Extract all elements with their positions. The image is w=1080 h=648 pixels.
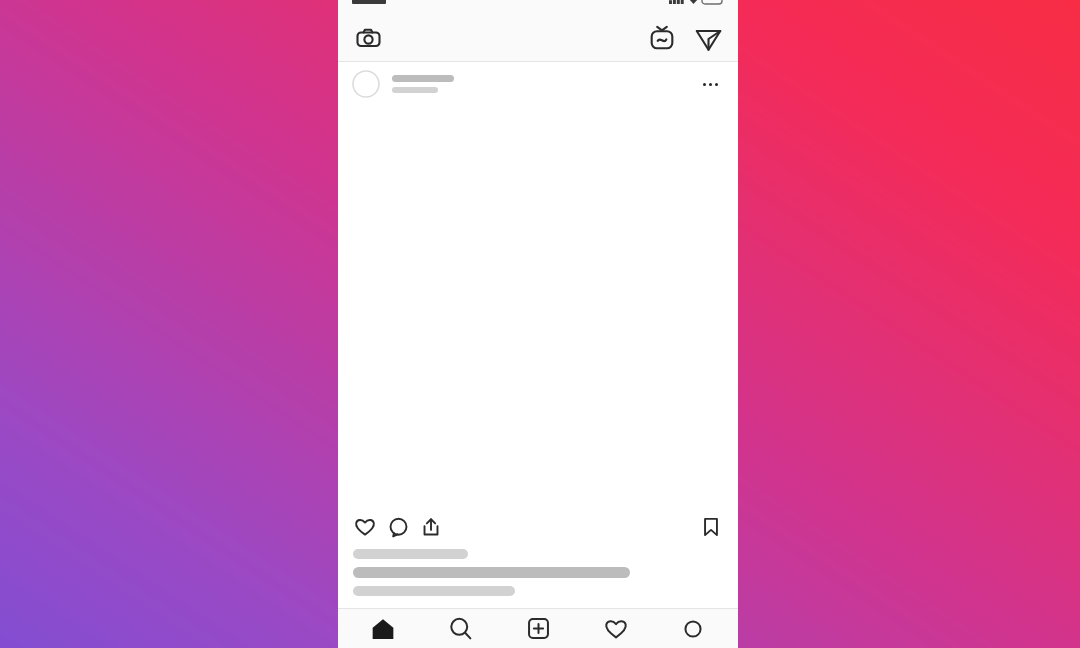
button[interactable]: Camera [353,23,383,53]
button[interactable]: Comment [384,513,412,541]
button[interactable]: Like [351,513,379,541]
button[interactable]: Create new post [516,609,560,648]
button[interactable]: Direct messages [693,23,723,53]
button[interactable]: Save [697,513,725,541]
button[interactable]: Share [417,513,445,541]
button[interactable]: Search [438,609,482,648]
button[interactable]: More options [696,70,724,98]
button[interactable]: More options [338,62,738,106]
button[interactable]: IGTV [647,23,677,53]
button[interactable]: Home [361,609,405,648]
button[interactable]: Activity [594,609,638,648]
button[interactable]: Profile [671,609,715,648]
